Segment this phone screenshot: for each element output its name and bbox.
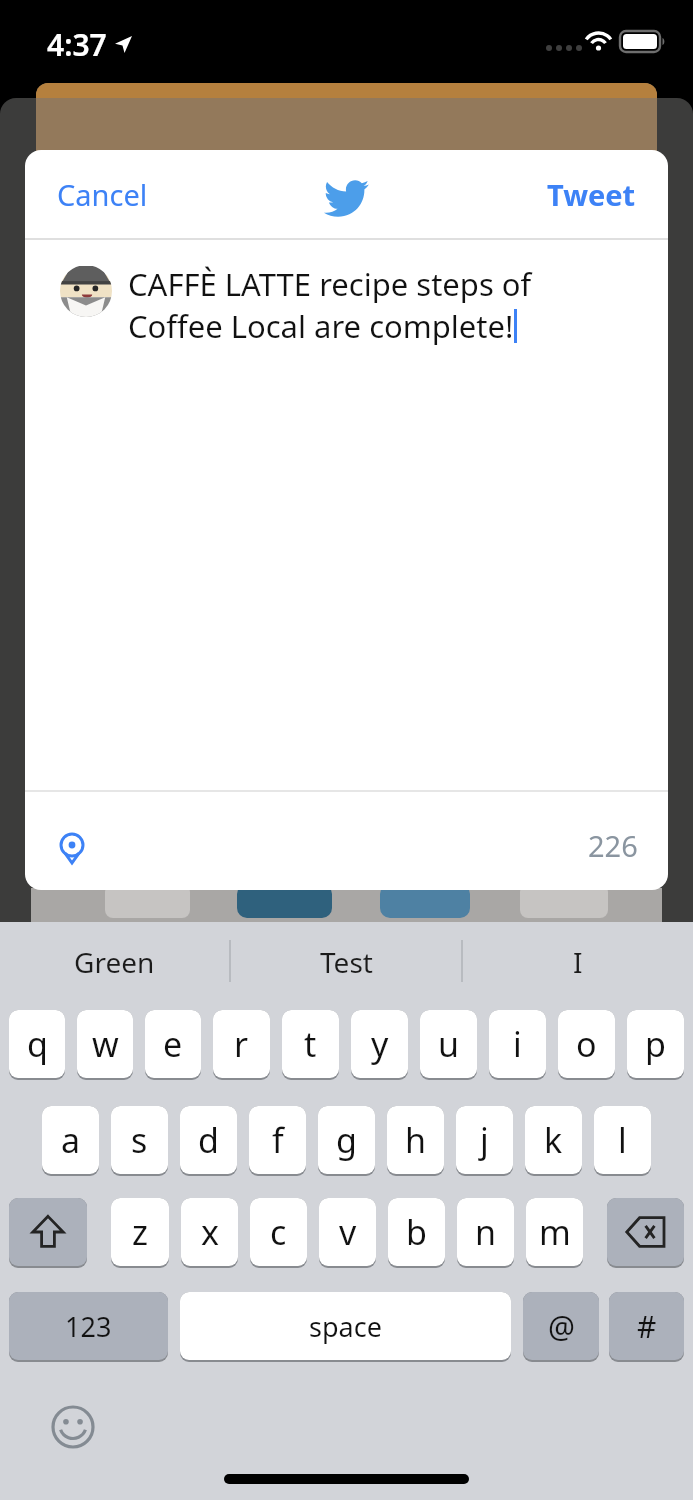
button[interactable]: u <box>420 1010 477 1080</box>
button[interactable]: o <box>558 1010 615 1080</box>
staticText: n <box>475 1209 497 1255</box>
staticText: p <box>645 1021 666 1067</box>
staticText: i <box>513 1021 522 1067</box>
button[interactable]: l <box>594 1106 651 1176</box>
staticText: g <box>336 1117 357 1163</box>
button[interactable]: w <box>77 1010 133 1080</box>
staticText: d <box>198 1117 219 1163</box>
button[interactable]: space <box>180 1292 511 1362</box>
button[interactable]: h <box>387 1106 444 1176</box>
button[interactable]: m <box>526 1198 583 1268</box>
button[interactable]: q <box>9 1010 65 1080</box>
staticText: y <box>371 1021 389 1067</box>
staticText: # <box>637 1306 657 1347</box>
staticText: CAFFÈ LATTE recipe steps of <box>128 263 532 305</box>
button[interactable]: Tweet <box>535 163 648 226</box>
staticText: o <box>576 1021 597 1067</box>
staticText: x <box>201 1209 219 1255</box>
button[interactable] <box>42 818 102 878</box>
button[interactable]: v <box>319 1198 376 1268</box>
button[interactable]: s <box>111 1106 168 1176</box>
button[interactable]: r <box>213 1010 270 1080</box>
staticText: z <box>132 1209 148 1255</box>
button[interactable]: Test <box>231 926 461 998</box>
staticText: k <box>544 1117 563 1163</box>
button[interactable]: Cancel <box>45 163 160 226</box>
staticText: j <box>480 1117 489 1163</box>
staticText: space <box>309 1308 382 1345</box>
button[interactable]: y <box>351 1010 408 1080</box>
staticText: Green <box>74 943 155 981</box>
button[interactable]: t <box>282 1010 339 1080</box>
staticText: e <box>163 1021 183 1067</box>
staticText: f <box>272 1117 284 1163</box>
button[interactable]: n <box>457 1198 514 1268</box>
button[interactable]: x <box>181 1198 238 1268</box>
staticText: m <box>539 1209 571 1255</box>
button[interactable]: # <box>609 1292 684 1362</box>
button[interactable]: d <box>180 1106 237 1176</box>
button[interactable]: k <box>525 1106 582 1176</box>
button[interactable]: j <box>456 1106 513 1176</box>
staticText: I <box>573 943 583 981</box>
staticText: w <box>92 1021 119 1067</box>
staticText: h <box>405 1117 427 1163</box>
button[interactable]: Green <box>0 926 229 998</box>
staticText: Cancel <box>57 175 148 214</box>
button[interactable]: c <box>250 1198 307 1268</box>
staticText: 4:37 <box>47 24 107 65</box>
staticText: r <box>234 1021 249 1067</box>
staticText: 123 <box>65 1308 112 1345</box>
button[interactable]: f <box>249 1106 306 1176</box>
button[interactable]: 123 <box>9 1292 168 1362</box>
button[interactable] <box>48 1402 98 1452</box>
staticText: Coffee Local are complete! <box>128 305 514 347</box>
staticText: Test <box>320 943 373 981</box>
staticText: u <box>438 1021 460 1067</box>
staticText: b <box>406 1209 427 1255</box>
button[interactable]: p <box>627 1010 684 1080</box>
staticText: q <box>27 1021 48 1067</box>
staticText: 226 <box>588 826 638 865</box>
staticText: t <box>304 1021 317 1067</box>
staticText: a <box>61 1117 81 1163</box>
button[interactable]: i <box>489 1010 546 1080</box>
button[interactable] <box>607 1198 684 1268</box>
button[interactable]: e <box>145 1010 201 1080</box>
button[interactable]: a <box>42 1106 99 1176</box>
staticText: c <box>270 1209 287 1255</box>
button[interactable]: z <box>111 1198 169 1268</box>
staticText: l <box>618 1117 627 1163</box>
button[interactable]: b <box>388 1198 445 1268</box>
staticText: @ <box>548 1306 575 1347</box>
staticText: v <box>339 1209 357 1255</box>
button[interactable]: I <box>463 926 693 998</box>
staticText: Tweet <box>547 175 636 214</box>
button[interactable]: g <box>318 1106 375 1176</box>
button[interactable]: @ <box>523 1292 599 1362</box>
staticText: s <box>131 1117 148 1163</box>
button[interactable] <box>9 1198 87 1268</box>
